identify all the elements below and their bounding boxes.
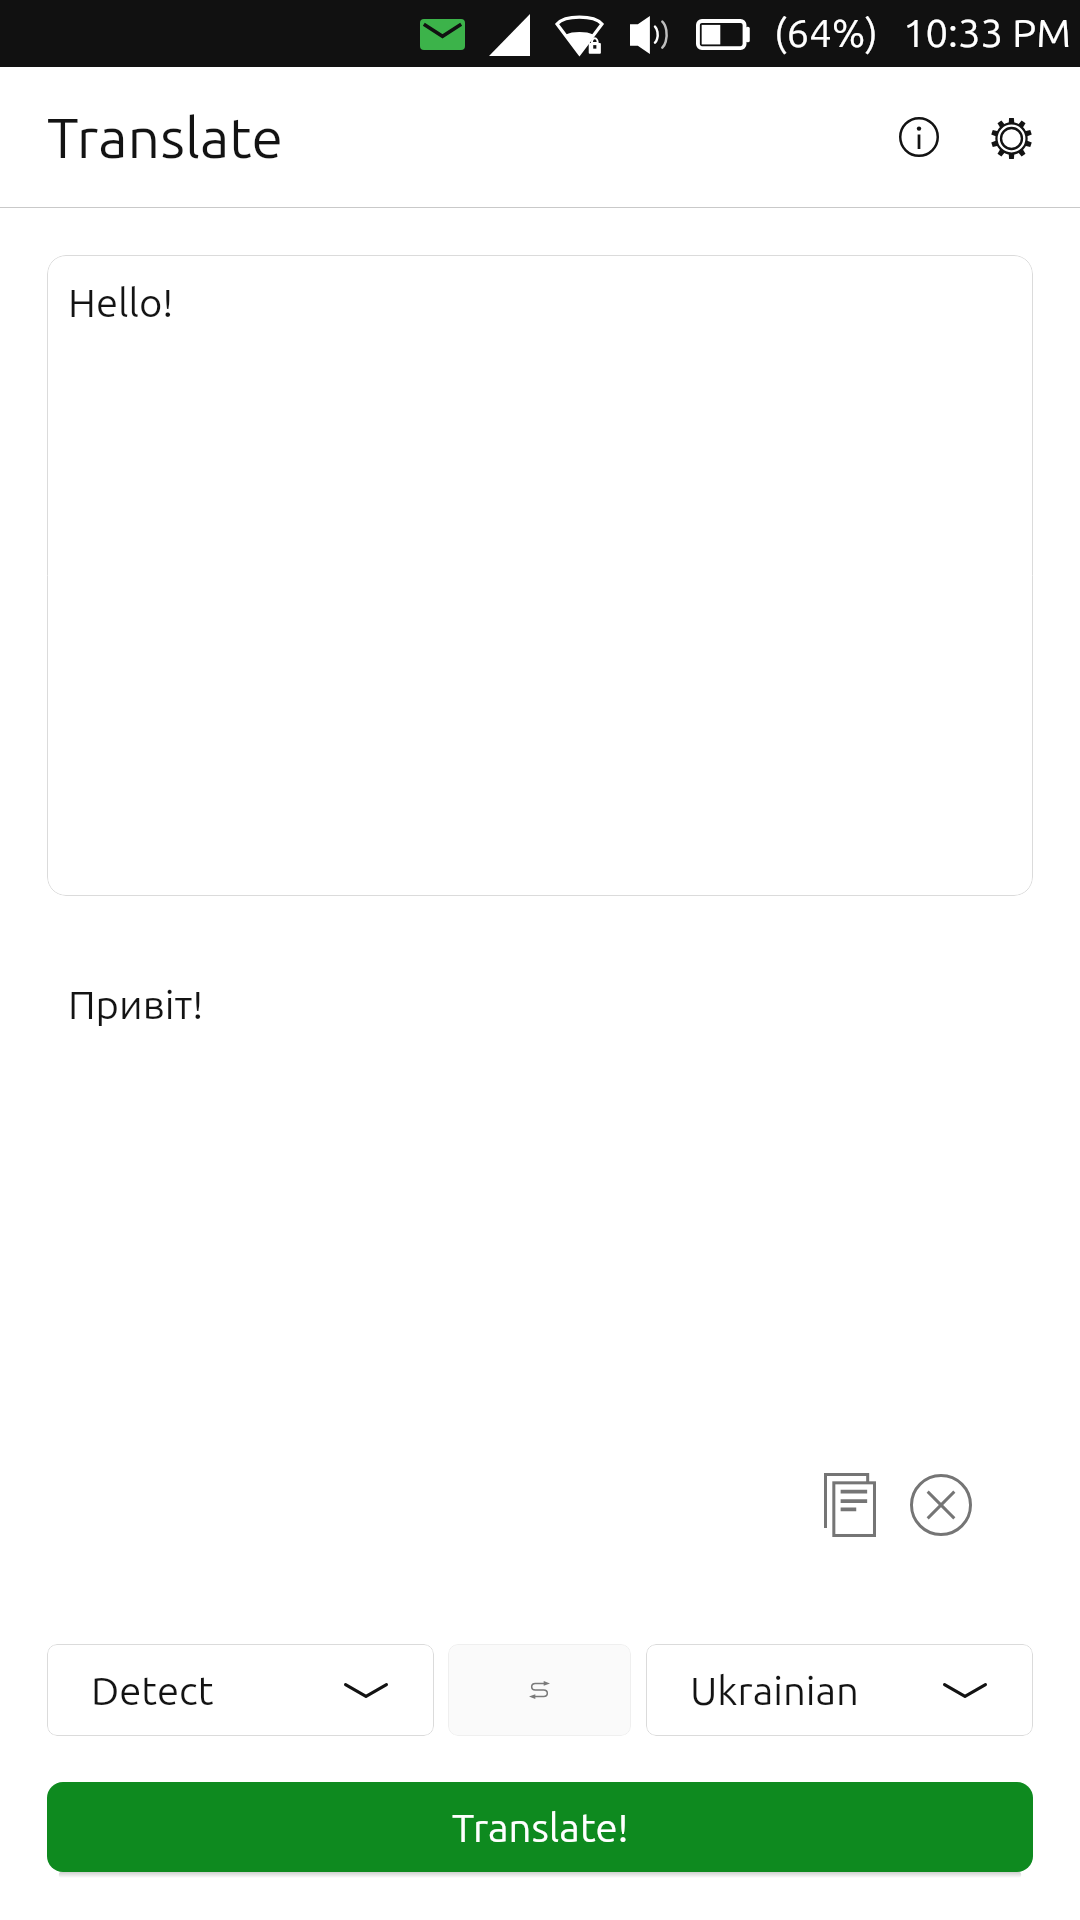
button[interactable]: Info (873, 91, 965, 183)
staticText: Translate (47, 105, 283, 169)
button[interactable]: Settings (965, 92, 1057, 184)
staticText: (64%) (774, 10, 878, 55)
staticText: Detect (91, 1668, 214, 1713)
staticText: 10:33 PM (903, 10, 1071, 55)
staticText: Hello! (68, 280, 174, 325)
staticText: Ukrainian (690, 1668, 859, 1713)
button[interactable]: Translate! (47, 1782, 1033, 1872)
staticText: Привіт! (68, 982, 204, 1027)
button[interactable]: Copy (804, 1459, 896, 1551)
button[interactable]: Hello! (47, 255, 1033, 896)
button[interactable]: Detect (47, 1644, 434, 1736)
button[interactable]: Clear (895, 1459, 987, 1551)
button[interactable]: Ukrainian (646, 1644, 1033, 1736)
button[interactable]: Swap languages (448, 1644, 631, 1736)
staticText: Translate! (452, 1805, 629, 1850)
